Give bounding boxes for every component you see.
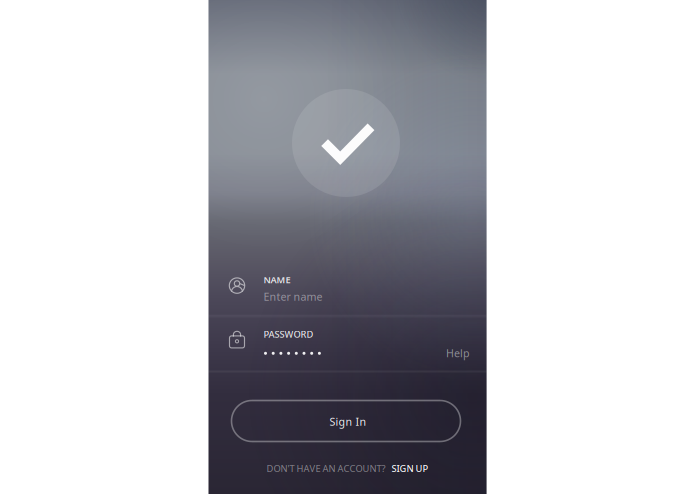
button[interactable]: Sign In [231, 400, 460, 441]
button[interactable]: Help [439, 339, 477, 367]
staticText: NAME [263, 273, 290, 286]
staticText: PASSWORD [263, 328, 313, 340]
button[interactable]: NAME [208, 260, 486, 316]
staticText: Enter name [263, 289, 322, 304]
staticText: DON'T HAVE AN ACCOUNT? [266, 462, 385, 475]
staticText: SIGN UP [391, 462, 428, 475]
button[interactable]: DON'T HAVE AN ACCOUNT? [208, 458, 486, 478]
staticText: Sign In [329, 414, 366, 429]
staticText: Help [446, 346, 470, 360]
